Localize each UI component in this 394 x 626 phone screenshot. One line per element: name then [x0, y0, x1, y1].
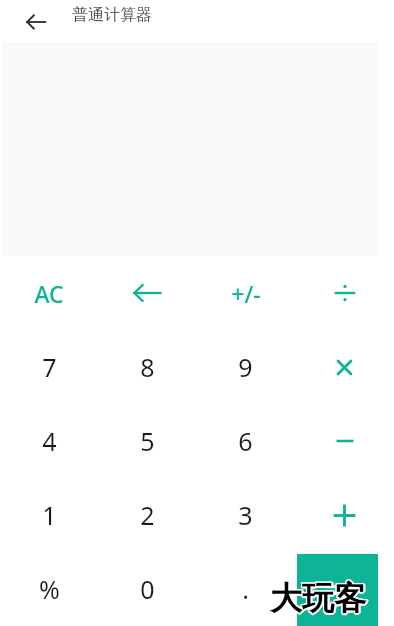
button[interactable]: 3: [196, 478, 295, 552]
button[interactable]: Backspace: [98, 256, 196, 330]
staticText: 大玩客: [269, 578, 365, 618]
staticText: AC: [34, 278, 64, 309]
button[interactable]: 0: [98, 552, 196, 626]
button[interactable]: 2: [98, 478, 196, 552]
button[interactable]: 1: [0, 478, 98, 552]
staticText: 大玩客: [271, 579, 367, 619]
button[interactable]: Back: [16, 2, 56, 42]
staticText: 0: [140, 572, 155, 606]
button[interactable]: 4: [0, 404, 98, 478]
button[interactable]: Minus: [295, 404, 394, 478]
button[interactable]: Plus: [295, 478, 394, 552]
staticText: +/-: [231, 278, 261, 309]
staticText: 1: [42, 498, 57, 532]
staticText: 大玩客: [271, 577, 367, 617]
button[interactable]: 7: [0, 330, 98, 404]
staticText: 5: [140, 424, 155, 458]
button[interactable]: AC: [0, 256, 98, 330]
button[interactable]: Divide: [295, 256, 394, 330]
button[interactable]: %: [0, 552, 98, 626]
button[interactable]: 9: [196, 330, 295, 404]
staticText: .: [242, 572, 249, 606]
staticText: 7: [42, 350, 57, 384]
staticText: 3: [238, 498, 253, 532]
button[interactable]: Multiply: [295, 330, 394, 404]
staticText: 8: [140, 350, 155, 384]
staticText: 6: [238, 424, 253, 458]
staticText: 普通计算器: [72, 5, 152, 25]
staticText: %: [39, 572, 60, 606]
button[interactable]: 5: [98, 404, 196, 478]
button[interactable]: 8: [98, 330, 196, 404]
button[interactable]: 6: [196, 404, 295, 478]
staticText: 4: [42, 424, 57, 458]
staticText: 9: [238, 350, 253, 384]
staticText: 大玩客: [269, 577, 365, 617]
staticText: 大玩客: [270, 578, 366, 618]
button[interactable]: Equals: [297, 554, 378, 626]
staticText: 大玩客: [272, 578, 368, 618]
staticText: 2: [140, 498, 155, 532]
staticText: 大玩客: [269, 579, 365, 619]
staticText: 大玩客: [270, 580, 366, 620]
button[interactable]: .: [196, 552, 295, 626]
button[interactable]: +/-: [196, 256, 295, 330]
staticText: 大玩客: [270, 577, 366, 617]
